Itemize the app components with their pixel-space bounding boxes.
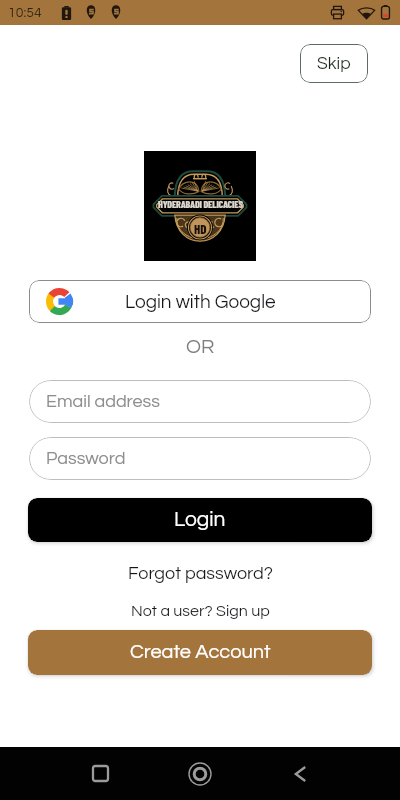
staticText: Login [174, 509, 226, 531]
button[interactable]: Login with Google [29, 280, 371, 323]
staticText: 10:54 [8, 6, 42, 20]
button[interactable]: Login [28, 498, 372, 542]
staticText: Login with Google [125, 292, 276, 312]
button[interactable]: Skip [300, 44, 368, 83]
button[interactable]: Forgot password? [128, 564, 273, 583]
button[interactable]: Recents [76, 747, 124, 800]
staticText: Skip [317, 55, 351, 73]
button[interactable]: Password [29, 437, 371, 480]
staticText: Create Account [130, 642, 271, 663]
button[interactable]: Email address [29, 380, 371, 423]
button[interactable]: Back [276, 747, 324, 800]
staticText: Email address [46, 392, 160, 411]
button[interactable]: Not a user? Sign up [131, 603, 270, 619]
button[interactable]: Create Account [28, 630, 372, 675]
staticText: HYDERABADI DELICACIES [158, 198, 243, 210]
staticText: OR [186, 337, 215, 358]
staticText: HD [194, 221, 207, 237]
button[interactable]: Home [176, 747, 224, 800]
staticText: Password [46, 449, 126, 468]
